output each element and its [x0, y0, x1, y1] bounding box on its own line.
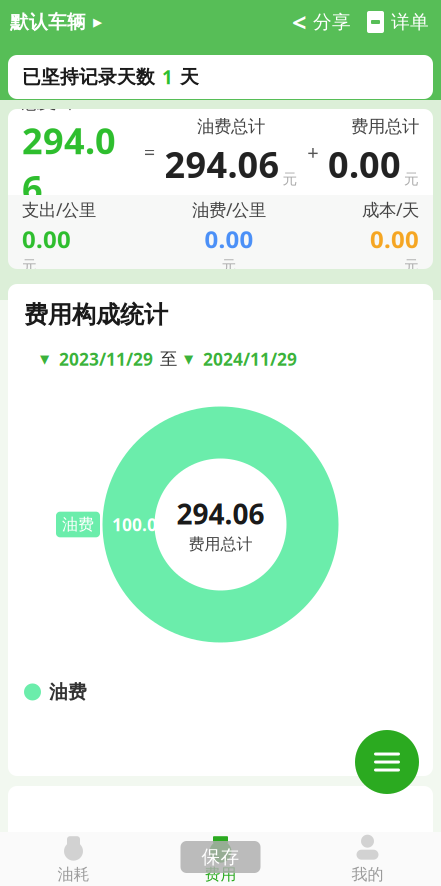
staticText: 油费/公里 [192, 198, 266, 221]
staticText: 已坚持记录天数 [22, 65, 155, 88]
staticText: 1 [162, 65, 173, 89]
staticText: 294.06 [176, 495, 264, 532]
staticText: ▼ [184, 352, 193, 366]
staticText: 0.00 [204, 223, 253, 255]
button[interactable]: 更多操作 [355, 730, 419, 794]
staticText: 294.06 [22, 116, 116, 212]
staticText: 元 [22, 257, 37, 275]
staticText: 2024/11/29 [203, 347, 297, 370]
staticText: 费用总计 [188, 534, 252, 554]
staticText: 费用 [204, 865, 236, 884]
staticText: 分享 [313, 10, 351, 33]
button[interactable]: 详单 [357, 4, 441, 39]
staticText: 支出/公里 [22, 198, 96, 221]
staticText: 油费 [62, 515, 94, 534]
staticText: 2023/11/29 [59, 347, 153, 370]
staticText: 总支出 [22, 92, 73, 113]
staticText: 元 [221, 257, 236, 275]
staticText: 天 [180, 65, 199, 88]
button[interactable]: 默认车辆 [0, 4, 102, 39]
staticText: ▼ [40, 352, 49, 366]
staticText: 至 [160, 348, 177, 370]
staticText: < [292, 5, 306, 39]
staticText: 元 [282, 170, 297, 188]
button[interactable]: 我的 [294, 832, 441, 886]
button[interactable]: 费用 [147, 832, 294, 886]
staticText: 我的 [351, 865, 383, 884]
staticText: + [307, 139, 318, 165]
button[interactable]: ▼ [184, 343, 297, 374]
staticText: 294.06 [164, 140, 279, 188]
staticText: 元 [404, 257, 419, 275]
staticText: 油费 [49, 680, 87, 703]
button[interactable]: 油耗 [0, 832, 147, 886]
staticText: 0.00 [370, 223, 419, 255]
staticText: 成本/天 [362, 198, 419, 221]
staticText: ▶ [93, 15, 102, 29]
staticText: 油费总计 [197, 116, 265, 137]
button[interactable]: ▼ [40, 343, 153, 374]
staticText: 默认车辆 [10, 10, 86, 33]
staticText: 元 [404, 170, 419, 188]
staticText: 保存 [201, 845, 239, 868]
staticText: 油耗 [57, 865, 89, 884]
staticText: = [144, 139, 155, 165]
staticText: 费用总计 [351, 116, 419, 137]
staticText: 费用构成统计 [24, 300, 168, 329]
staticText: 详单 [391, 10, 429, 33]
staticText: 100.0% [112, 513, 173, 536]
button[interactable]: < [286, 0, 357, 45]
staticText: 0.00 [22, 223, 71, 255]
staticText: 0.00 [328, 140, 401, 188]
